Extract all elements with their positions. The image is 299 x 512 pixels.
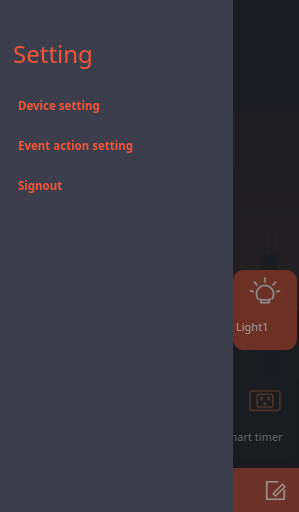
staticText: Device setting xyxy=(18,98,100,114)
button[interactable]: Signout xyxy=(0,175,233,196)
staticText: Light1 xyxy=(236,319,269,334)
button[interactable]: Smart timer xyxy=(233,378,297,458)
button[interactable]: Light1 xyxy=(233,270,297,350)
staticText: Signout xyxy=(18,178,63,194)
button[interactable]: Event action setting xyxy=(0,135,233,156)
button[interactable]: Device setting xyxy=(0,95,233,116)
staticText: Smart timer xyxy=(233,429,283,444)
staticText: Setting xyxy=(13,37,93,70)
staticText: Event action setting xyxy=(18,138,134,154)
button[interactable]: Edit xyxy=(260,475,290,505)
